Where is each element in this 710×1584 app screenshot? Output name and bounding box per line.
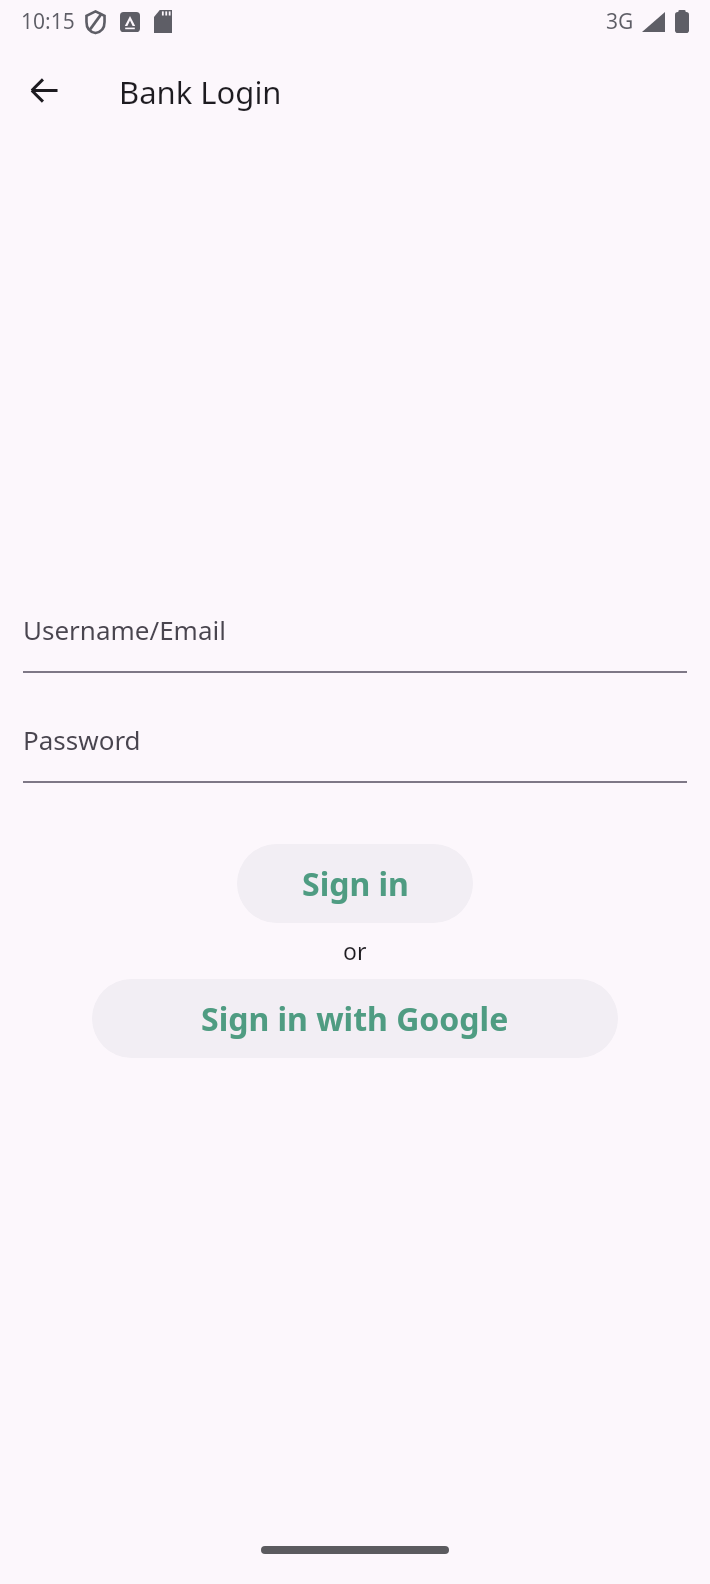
button[interactable]: Username/Email [23, 612, 687, 673]
staticText: Sign in [302, 862, 409, 906]
staticText: or [343, 935, 367, 966]
button[interactable]: Sign in with Google [92, 979, 618, 1058]
staticText: 10:15 [21, 7, 75, 36]
button[interactable]: Password [23, 722, 687, 783]
staticText: Sign in with Google [201, 997, 509, 1041]
staticText: Password [23, 722, 141, 757]
staticText: Username/Email [23, 612, 226, 647]
button[interactable]: Back [12, 58, 76, 122]
staticText: 3G [606, 7, 634, 36]
staticText: Bank Login [119, 71, 282, 113]
button[interactable]: Sign in [237, 844, 473, 923]
